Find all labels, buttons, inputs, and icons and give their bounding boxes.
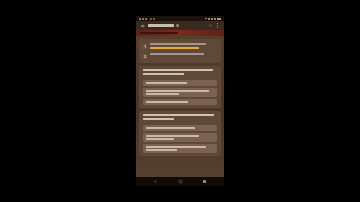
button[interactable]: 1 — [139, 41, 221, 51]
button[interactable]: Back — [151, 177, 160, 186]
button[interactable] — [143, 88, 217, 97]
button[interactable]: 2 — [139, 51, 221, 61]
button[interactable] — [136, 30, 224, 36]
button[interactable] — [143, 125, 217, 131]
button[interactable]: More options — [214, 22, 221, 29]
staticText: 2 — [144, 55, 146, 59]
button[interactable] — [148, 24, 207, 27]
button[interactable]: Home — [176, 177, 185, 186]
button[interactable] — [143, 80, 217, 86]
button[interactable]: Expand — [207, 22, 214, 29]
staticText: 1 — [144, 45, 146, 49]
button[interactable]: Back — [139, 22, 146, 29]
button[interactable]: Recent apps — [200, 177, 209, 186]
button[interactable] — [143, 99, 217, 105]
button[interactable] — [143, 144, 217, 153]
button[interactable] — [143, 133, 217, 142]
